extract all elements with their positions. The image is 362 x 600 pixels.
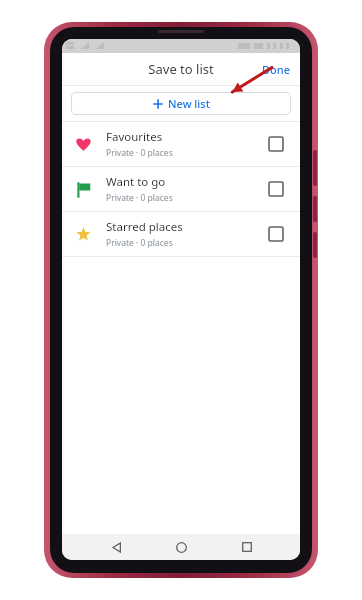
button[interactable]: Want to go [62,167,300,211]
button[interactable]: Select Starred places [264,222,288,246]
button[interactable]: Select Favourites [264,132,288,156]
button[interactable]: Done [252,56,300,83]
staticText: Private · 0 places [106,192,173,204]
button[interactable]: Recents [235,535,259,559]
button[interactable]: Home [169,535,193,559]
staticText: Private · 0 places [106,147,173,159]
staticText: Done [262,62,290,77]
button[interactable]: Back [104,535,128,559]
staticText: Favourites [106,129,163,145]
staticText: Private · 0 places [106,237,173,249]
button[interactable]: Favourites [62,122,300,166]
button[interactable]: Select Want to go [264,177,288,201]
button[interactable]: Starred places [62,212,300,256]
staticText: Starred places [106,219,183,235]
staticText: Want to go [106,174,166,190]
button[interactable]: New list [71,92,291,115]
staticText: Save to list [148,60,214,78]
staticText: New list [168,96,210,111]
